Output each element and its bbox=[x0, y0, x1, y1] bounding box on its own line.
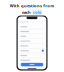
button[interactable] bbox=[18, 63, 46, 66]
staticText: role bbox=[33, 9, 41, 15]
staticText: With bbox=[10, 3, 20, 8]
staticText: from bbox=[43, 3, 54, 8]
staticText: questions bbox=[21, 3, 42, 8]
staticText: each bbox=[22, 9, 31, 15]
